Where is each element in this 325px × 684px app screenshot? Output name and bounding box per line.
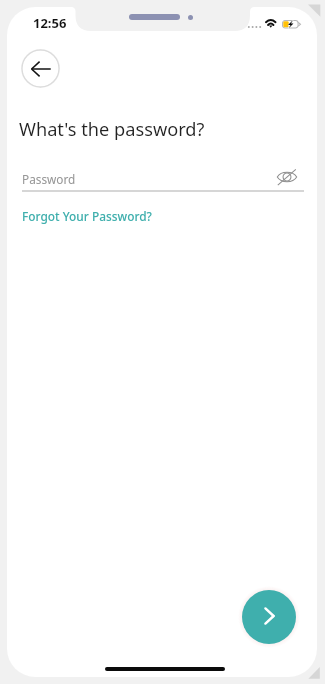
staticText: What's the password? (19, 117, 205, 142)
button[interactable]: Forgot Your Password? (22, 208, 152, 224)
button[interactable]: Back (21, 49, 60, 88)
staticText: Password (22, 171, 76, 187)
button[interactable]: Password (22, 167, 272, 191)
button[interactable]: Next (242, 590, 296, 644)
button[interactable]: Show password (274, 164, 300, 190)
staticText: 12:56 (33, 14, 67, 32)
staticText: Forgot Your Password? (22, 208, 152, 224)
